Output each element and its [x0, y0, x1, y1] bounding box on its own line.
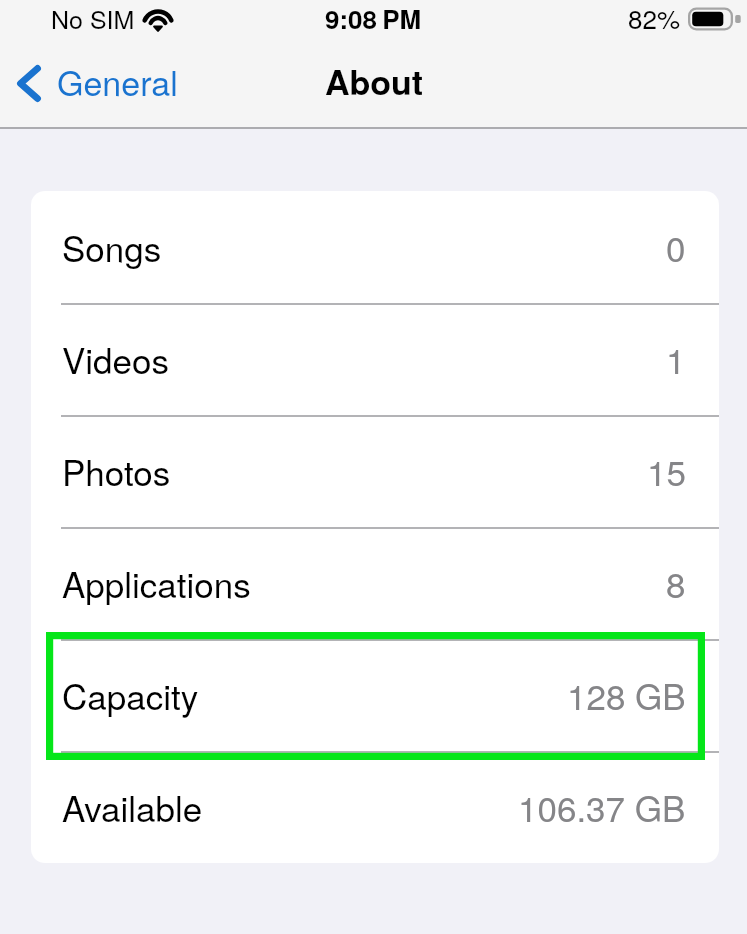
other: Wi-Fi [141, 8, 175, 32]
staticText: 128 GB [567, 670, 686, 720]
button[interactable]: Back to General [0, 51, 196, 116]
staticText: Applications [62, 558, 251, 608]
staticText: 0 [666, 222, 686, 272]
staticText: Photos [62, 446, 171, 496]
button[interactable]: Videos [31, 303, 719, 415]
staticText: 82% [628, 0, 681, 36]
staticText: 1 [666, 334, 686, 384]
button[interactable]: Photos [31, 415, 719, 527]
staticText: Songs [62, 222, 162, 272]
button[interactable]: Capacity [31, 639, 719, 751]
other: Back to General [17, 65, 41, 102]
staticText: Videos [62, 334, 169, 384]
staticText: 106.37 GB [518, 782, 686, 832]
staticText: No SIM [51, 0, 135, 36]
button[interactable]: Available [31, 751, 719, 863]
other: Battery 82 percent [688, 7, 741, 31]
button[interactable]: Applications [31, 527, 719, 639]
staticText: 9:08 PM [325, 0, 422, 37]
staticText: Capacity [62, 670, 199, 720]
staticText: General [57, 57, 178, 106]
button[interactable]: Songs [31, 191, 719, 303]
staticText: 8 [666, 558, 686, 608]
staticText: Available [62, 782, 203, 832]
staticText: 15 [647, 446, 686, 496]
staticText: About [325, 57, 424, 106]
